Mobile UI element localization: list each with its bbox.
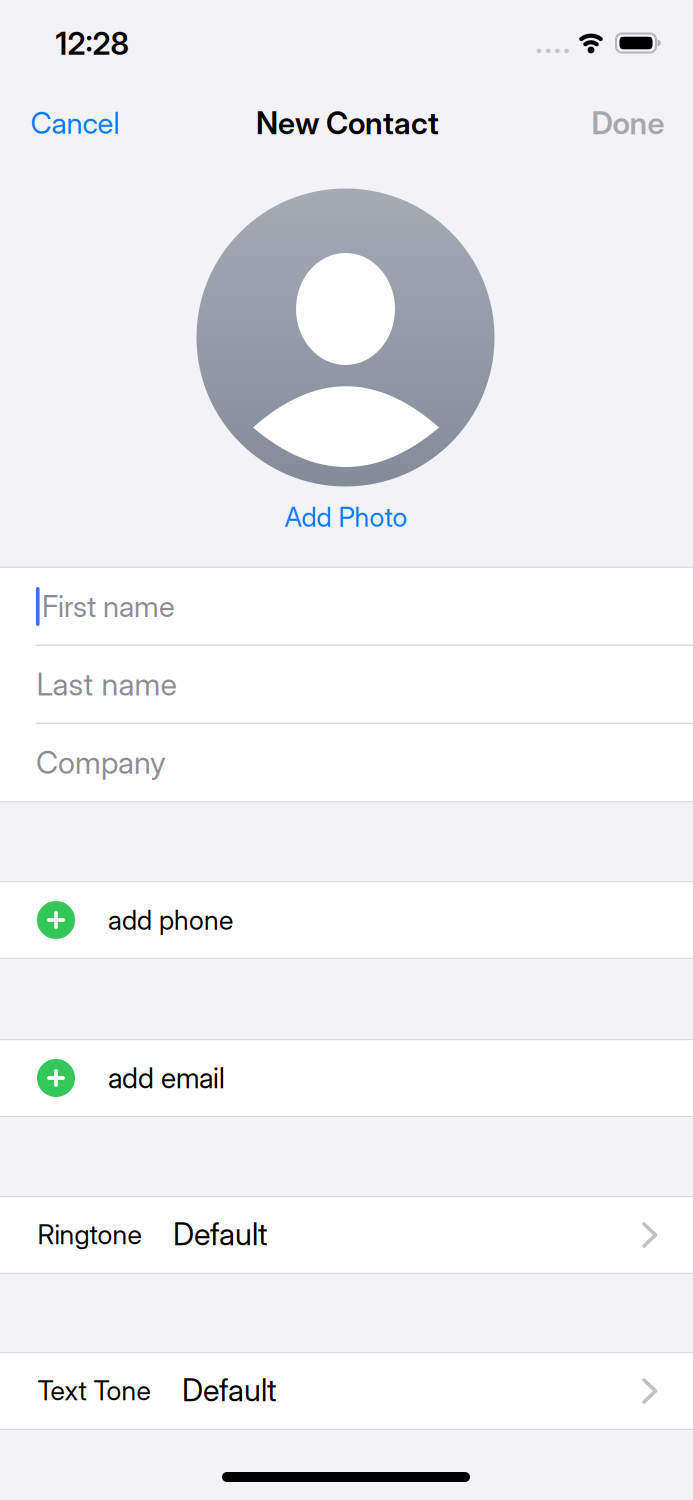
button[interactable]: Cancel [30,106,119,140]
staticText: 12:28 [55,25,129,62]
staticText: Company [36,745,166,781]
button[interactable]: Last name [0,645,693,723]
staticText: New Contact [256,105,439,141]
staticText: add email [108,1061,225,1094]
button[interactable]: Company [0,723,693,802]
button[interactable]: Done [591,105,664,141]
button[interactable]: First name [0,567,693,645]
staticText: Default [182,1372,277,1408]
staticText: Default [173,1216,268,1252]
staticText: Done [591,105,664,141]
staticText: Cancel [30,106,119,140]
button[interactable]: Text Tone [0,1352,693,1430]
staticText: Add Photo [284,501,407,533]
staticText: First name [42,589,175,624]
staticText: add phone [108,904,233,936]
button[interactable]: Ringtone [0,1196,693,1274]
staticText: Text Tone [37,1375,150,1406]
button[interactable]: add phone [0,881,693,959]
button[interactable]: add email [0,1039,693,1117]
button[interactable]: Add Photo [284,501,407,533]
staticText: Ringtone [37,1219,141,1250]
staticText: Last name [36,666,176,702]
